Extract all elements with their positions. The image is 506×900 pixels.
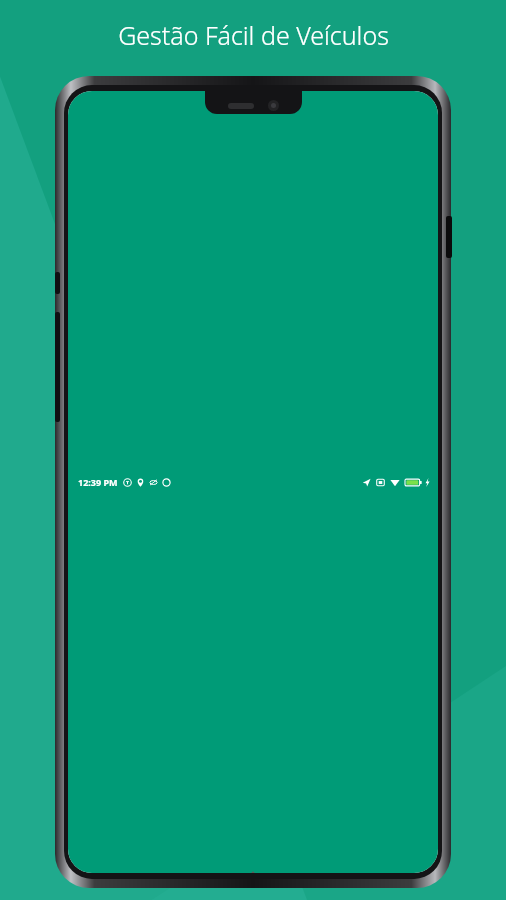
staticText: 12:39 PM: [78, 476, 118, 488]
staticText: Gestão Fácil de Veículos: [118, 18, 389, 52]
